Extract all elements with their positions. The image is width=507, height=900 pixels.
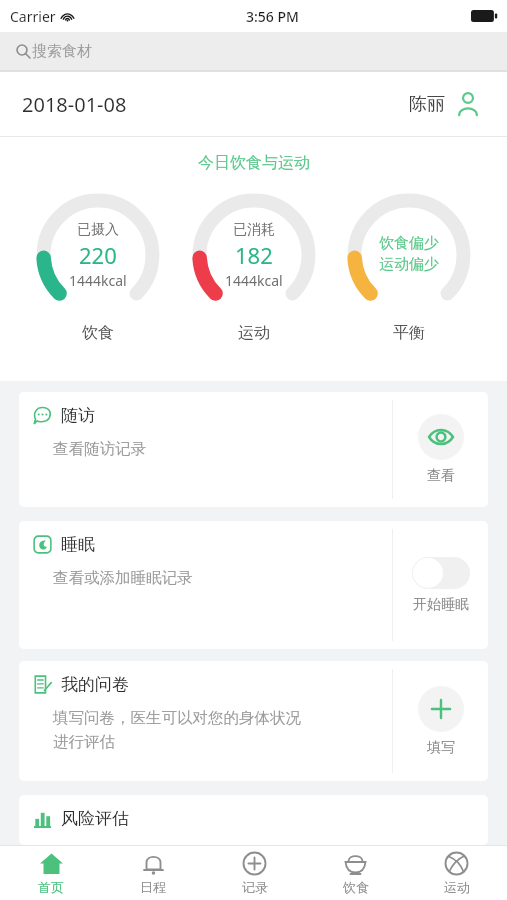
button[interactable]: 饮食 (305, 845, 406, 900)
staticText: 填写 (427, 739, 455, 757)
button[interactable]: 风险评估 (19, 795, 488, 845)
button[interactable]: 陈丽 (405, 87, 485, 121)
button[interactable]: 随访 (19, 392, 488, 507)
button[interactable]: 运动 (406, 845, 507, 900)
staticText: 首页 (38, 879, 64, 895)
staticText: 填写问卷，医生可以对您的身体状况 进行评估 (53, 708, 301, 752)
staticText: Carrier (10, 7, 56, 26)
staticText: 饮食偏少 (379, 234, 439, 253)
staticText: 运动 (238, 323, 270, 343)
staticText: 运动偏少 (379, 255, 439, 274)
staticText: 饮食 (82, 323, 114, 343)
button[interactable]: 首页 (0, 845, 102, 900)
staticText: 查看或添加睡眠记录 (53, 568, 193, 588)
staticText: 今日饮食与运动 (198, 153, 310, 173)
button[interactable]: 饮食偏少 (343, 189, 475, 343)
button[interactable]: 记录 (204, 845, 305, 900)
button[interactable]: 填写 (393, 661, 488, 781)
staticText: 饮食 (343, 879, 369, 895)
staticText: 风险评估 (61, 808, 129, 829)
staticText: 运动 (444, 879, 470, 895)
staticText: 开始睡眠 (413, 596, 469, 614)
staticText: 我的问卷 (61, 674, 129, 695)
staticText: 1444kcal (225, 271, 283, 290)
staticText: 2018-01-08 (22, 91, 127, 118)
staticText: 182 (235, 240, 273, 270)
staticText: 陈丽 (409, 93, 445, 116)
staticText: 搜索食材 (32, 42, 92, 61)
button[interactable]: 已摄入 (32, 189, 164, 343)
staticText: 查看随访记录 (53, 439, 146, 459)
staticText: 已摄入 (77, 221, 119, 239)
staticText: 随访 (61, 405, 95, 426)
staticText: 睡眠 (61, 534, 95, 555)
button[interactable]: 睡眠 (19, 521, 488, 649)
button[interactable]: 搜索食材 (0, 32, 507, 70)
button[interactable]: 已消耗 (188, 189, 320, 343)
staticText: 日程 (140, 879, 166, 895)
button[interactable]: 我的问卷 (19, 661, 488, 781)
staticText: 1444kcal (69, 271, 127, 290)
other: Profile (455, 91, 481, 117)
staticText: 已消耗 (233, 221, 275, 239)
staticText: 记录 (242, 879, 268, 895)
staticText: 平衡 (393, 323, 425, 343)
button[interactable]: 日程 (102, 845, 204, 900)
button[interactable]: 查看 (393, 392, 488, 507)
staticText: 查看 (427, 467, 455, 485)
staticText: 3:56 PM (246, 7, 299, 26)
staticText: 220 (79, 240, 117, 270)
button[interactable]: 开始睡眠 (393, 521, 488, 649)
